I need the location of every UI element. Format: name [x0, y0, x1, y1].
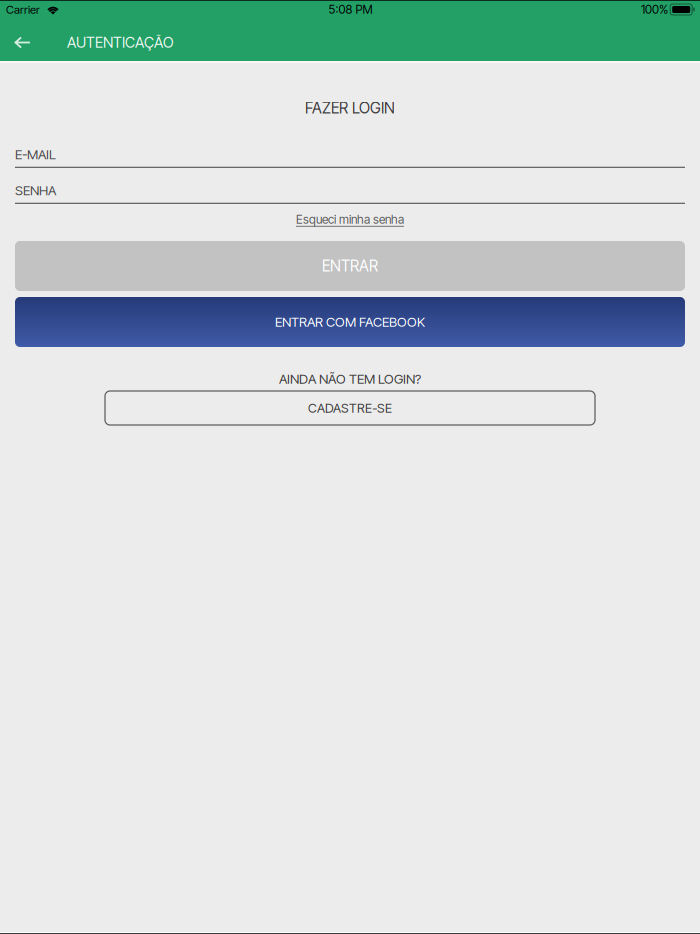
staticText: Carrier: [6, 3, 40, 16]
staticText: CADASTRE-SE: [308, 400, 392, 416]
staticText: AINDA NÃO TEM LOGIN?: [279, 371, 421, 387]
staticText: E-MAIL: [15, 146, 56, 162]
staticText: SENHA: [15, 182, 56, 198]
button[interactable]: CADASTRE-SE: [105, 391, 595, 425]
button[interactable]: ENTRAR: [15, 241, 685, 291]
staticText: 100%: [641, 2, 668, 17]
staticText: ENTRAR COM FACEBOOK: [275, 314, 425, 330]
staticText: ENTRAR: [322, 257, 378, 275]
staticText: 5:08 PM: [328, 2, 372, 17]
staticText: AUTENTICAÇÃO: [67, 34, 173, 51]
button[interactable]: ENTRAR COM FACEBOOK: [15, 297, 685, 347]
staticText: Esqueci minha senha: [296, 212, 404, 227]
staticText: FAZER LOGIN: [305, 99, 395, 117]
button[interactable]: Back: [0, 24, 45, 61]
button[interactable]: Esqueci minha senha: [296, 211, 404, 228]
